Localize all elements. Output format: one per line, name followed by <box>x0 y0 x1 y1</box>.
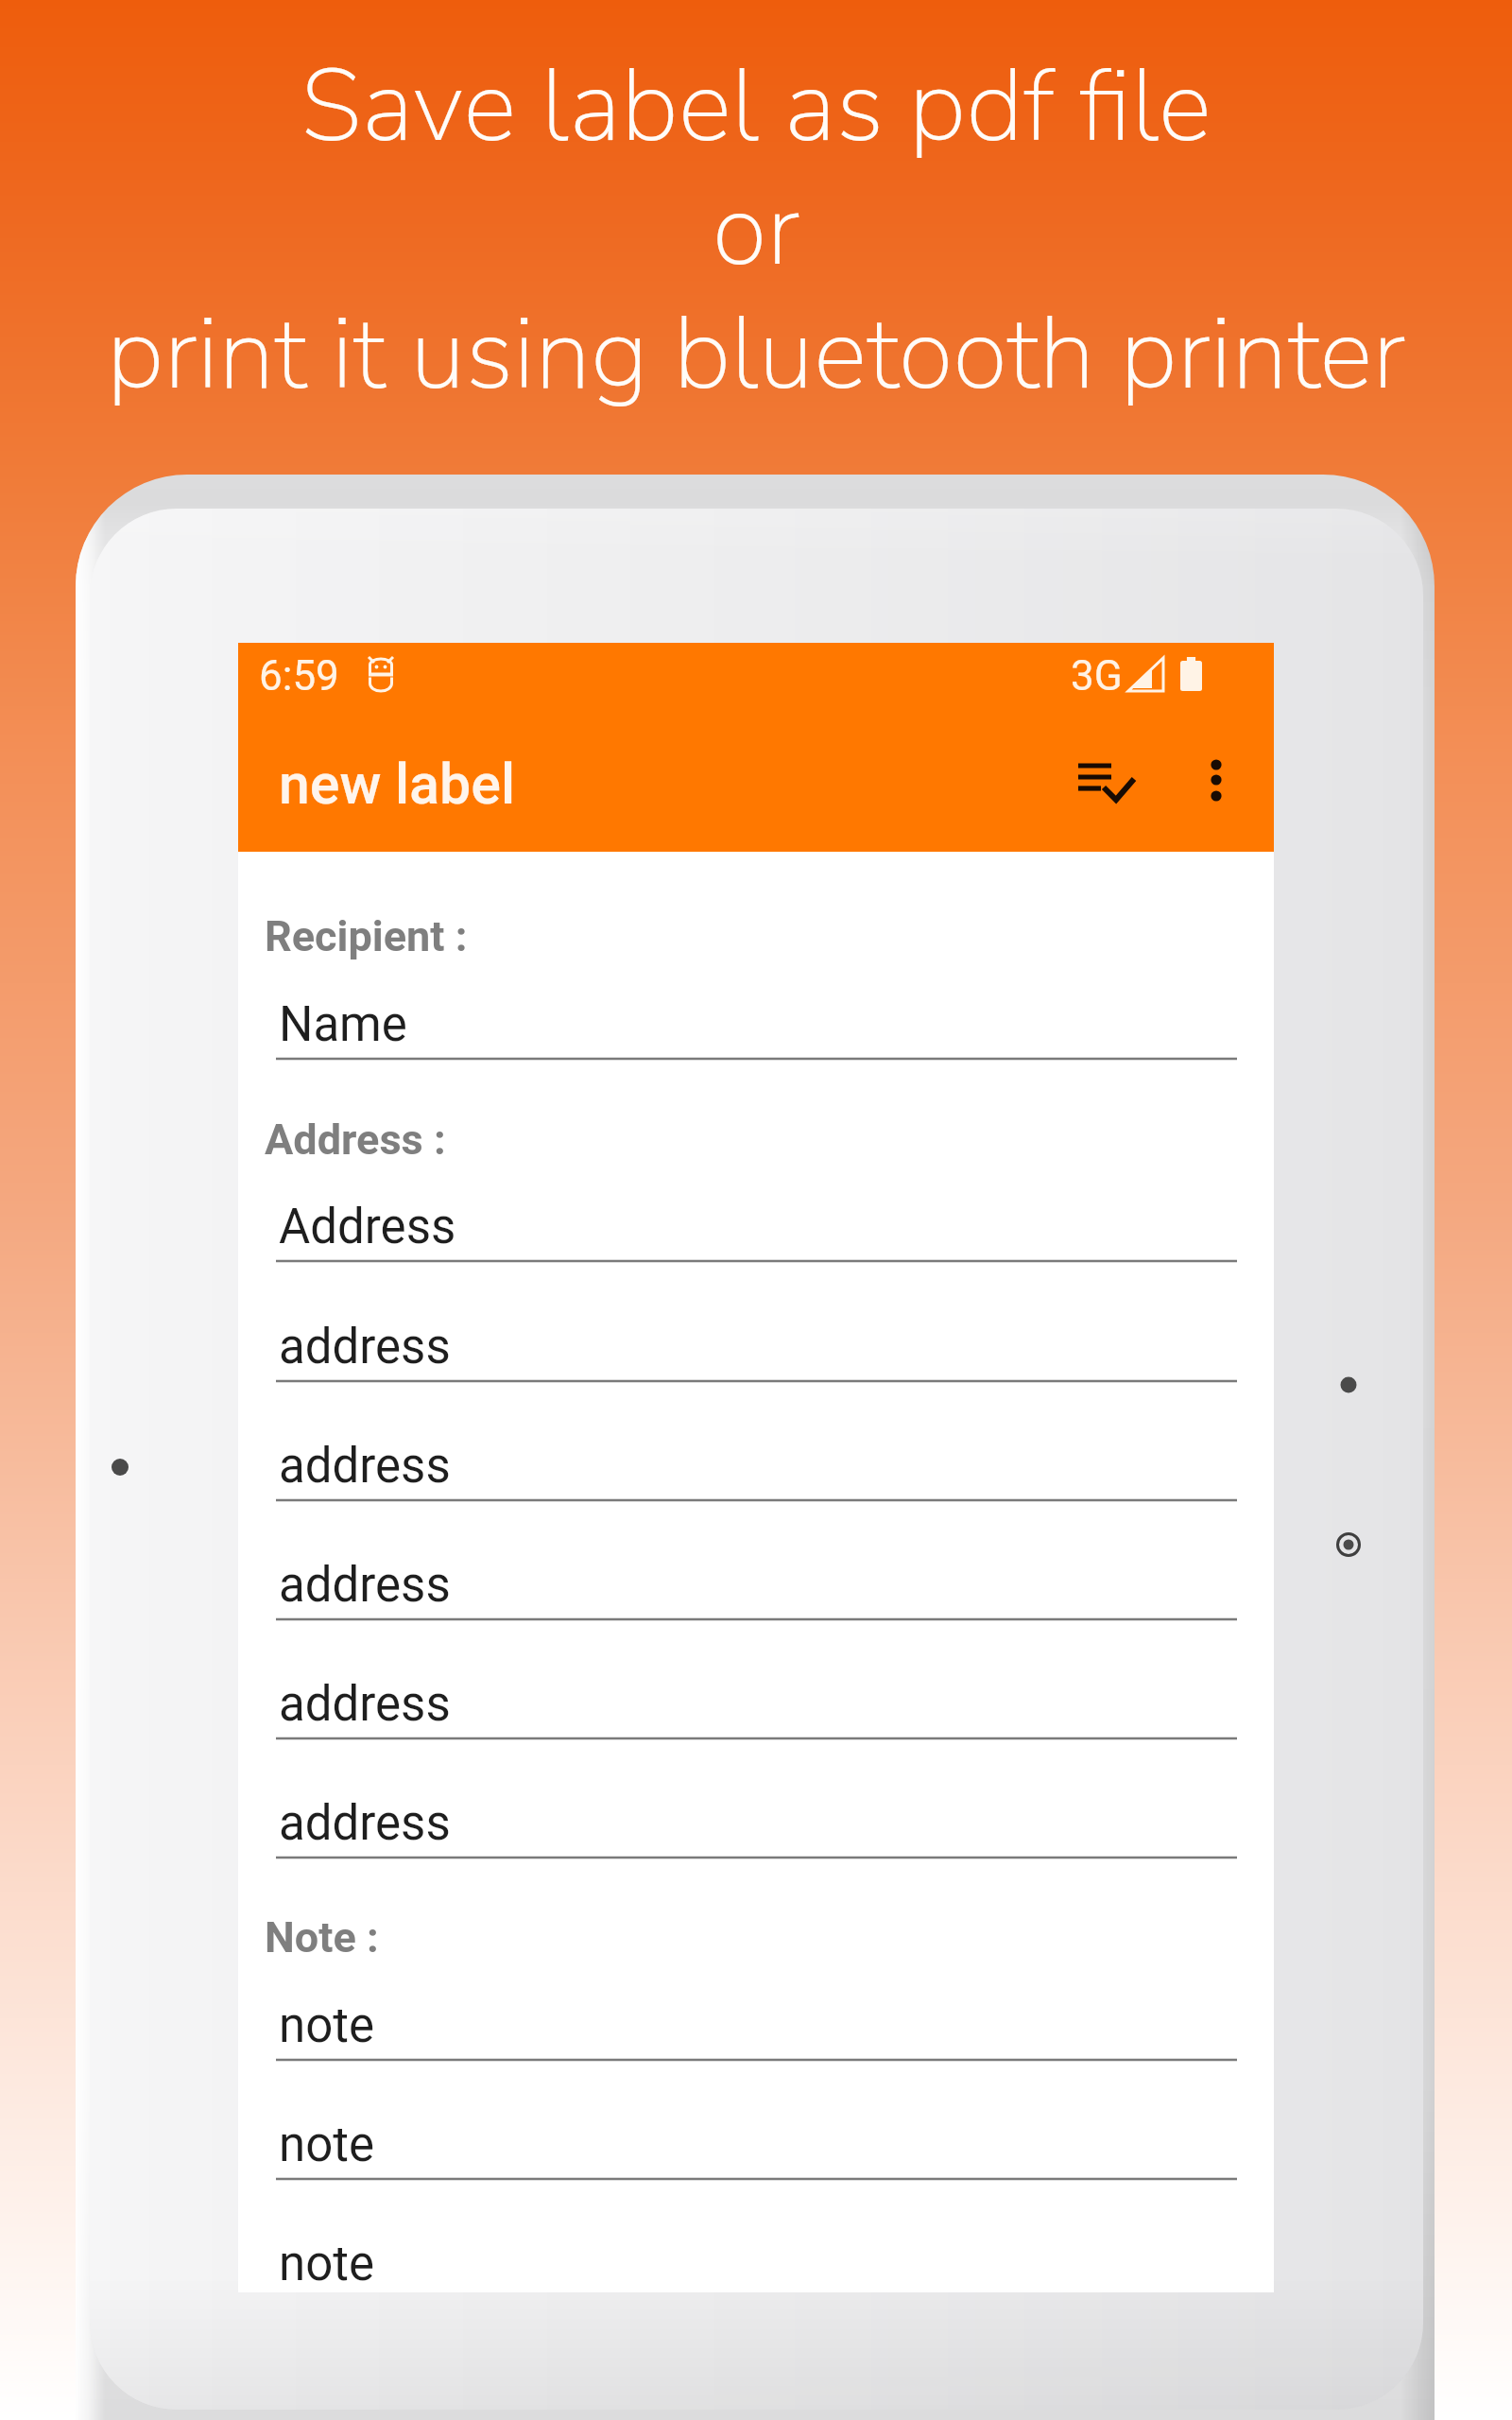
staticText: new label <box>279 752 516 817</box>
staticText: address <box>279 1557 451 1614</box>
staticText: address <box>279 1319 451 1375</box>
staticText: address <box>279 1438 451 1495</box>
staticText: Save label as pdf file or print it using… <box>0 38 1512 423</box>
staticText: 6:59 <box>259 651 339 700</box>
staticText: Name <box>279 996 407 1053</box>
staticText: note <box>279 2117 374 2173</box>
staticText: Address <box>279 1199 456 1255</box>
staticText: Recipient : <box>265 911 468 961</box>
button[interactable]: Save label <box>1066 737 1145 817</box>
staticText: Note : <box>265 1912 379 1962</box>
staticText: Address : <box>265 1115 446 1165</box>
staticText: note <box>279 2236 374 2292</box>
staticText: 3G <box>1071 651 1123 700</box>
staticText: note <box>279 1997 374 2054</box>
button[interactable]: new label <box>279 752 516 817</box>
staticText: address <box>279 1795 451 1852</box>
button[interactable]: More options <box>1177 737 1256 817</box>
staticText: address <box>279 1676 451 1733</box>
